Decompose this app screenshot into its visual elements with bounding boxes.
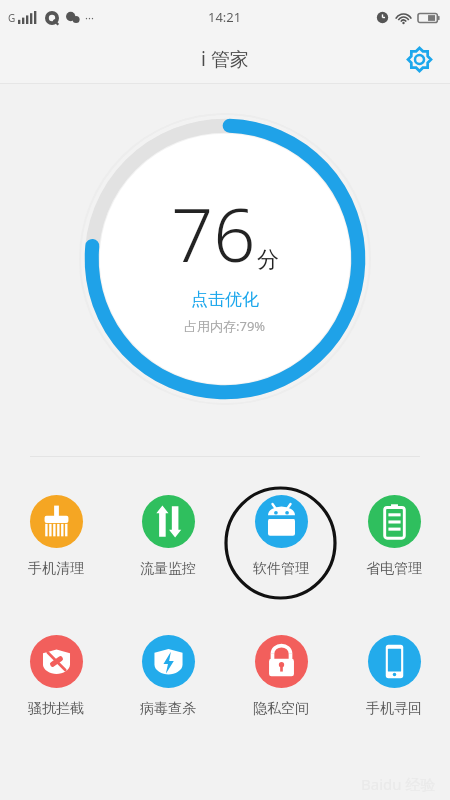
button[interactable]: 病毒查杀 [140,635,196,718]
button[interactable]: 手机清理 [28,495,84,578]
staticText: 14:21 [208,8,242,26]
button[interactable]: Settings [400,40,438,78]
staticText: 省电管理 [366,560,422,578]
staticText: 占用内存:79% [184,317,266,335]
staticText: 软件管理 [253,560,309,578]
staticText: 分 [257,246,279,274]
staticText: ··· [85,10,94,25]
button[interactable]: 省电管理 [366,495,422,578]
staticText: 手机清理 [28,560,84,578]
staticText: G [8,11,16,25]
staticText: 手机寻回 [366,700,422,718]
staticText: 76 [171,183,256,284]
button[interactable]: 软件管理 [253,495,309,578]
staticText: 流量监控 [140,560,196,578]
staticText: i 管家 [201,46,249,72]
button[interactable]: 手机寻回 [366,635,422,718]
staticText: 骚扰拦截 [28,700,84,718]
button[interactable]: 76 [79,113,371,405]
button[interactable]: 隐私空间 [253,635,309,718]
button[interactable]: 流量监控 [140,495,196,578]
button[interactable]: 骚扰拦截 [28,635,84,718]
staticText: 点击优化 [191,289,259,310]
staticText: 病毒查杀 [140,700,196,718]
staticText: 隐私空间 [253,700,309,718]
